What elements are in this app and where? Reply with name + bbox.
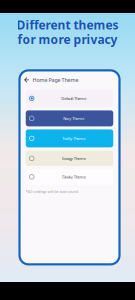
button[interactable]: Googy Theme: [26, 151, 113, 166]
staticText: for more privacy: [17, 31, 117, 47]
button[interactable]: Racy Theme: [26, 110, 113, 126]
button[interactable]: Default Theme: [26, 89, 113, 107]
button[interactable]: Twilly Theme: [26, 129, 113, 147]
staticText: Twilly Theme: [62, 136, 85, 141]
staticText: Tikoky Theme: [62, 174, 86, 179]
button[interactable]: Tikoky Theme: [26, 169, 113, 185]
staticText: Racy Theme: [63, 116, 84, 121]
staticText: Default Theme: [61, 96, 86, 101]
staticText: *All settings will be auto saved: [25, 189, 77, 194]
staticText: Home Page Theme: [32, 76, 78, 83]
staticText: Different themes: [16, 17, 118, 33]
staticText: Googy Theme: [62, 156, 86, 161]
button[interactable]: Back: [24, 77, 29, 83]
